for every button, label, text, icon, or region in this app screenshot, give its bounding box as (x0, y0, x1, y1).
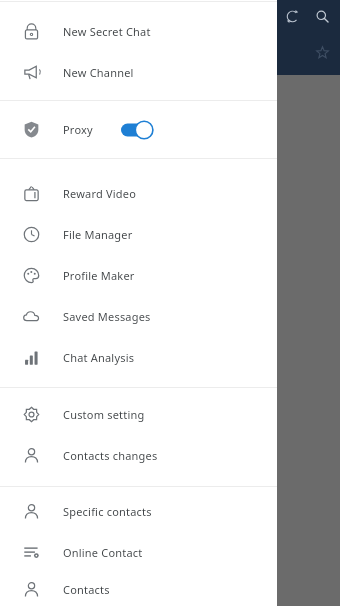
button[interactable]: Sync (278, 2, 306, 30)
button[interactable]: Profile Maker (0, 255, 277, 296)
button[interactable]: Proxy toggle (121, 120, 151, 140)
button[interactable]: Custom setting (0, 394, 277, 435)
staticText: Specific contacts (63, 504, 152, 519)
button[interactable]: Specific contacts (0, 491, 277, 532)
staticText: Contacts (63, 582, 110, 597)
button[interactable]: File Manager (0, 214, 277, 255)
button[interactable]: Contacts changes (0, 435, 277, 476)
button[interactable]: Online Contact (0, 532, 277, 573)
staticText: File Manager (63, 227, 133, 242)
staticText: Online Contact (63, 545, 143, 560)
button[interactable]: Favorites (308, 38, 336, 66)
staticText: Saved Messages (63, 309, 151, 324)
staticText: Proxy (63, 122, 93, 137)
button[interactable]: Saved Messages (0, 296, 277, 337)
button[interactable]: Search (308, 2, 336, 30)
button[interactable]: Chat Analysis (0, 337, 277, 378)
button[interactable]: New Channel (0, 52, 277, 93)
button[interactable]: Reward Video (0, 173, 277, 214)
staticText: Contacts changes (63, 448, 158, 463)
staticText: Profile Maker (63, 268, 135, 283)
staticText: New Channel (63, 65, 134, 80)
staticText: Custom setting (63, 407, 145, 422)
button[interactable]: Contacts (0, 573, 277, 606)
staticText: Reward Video (63, 186, 137, 201)
staticText: Chat Analysis (63, 350, 135, 365)
staticText: New Secret Chat (63, 24, 151, 39)
button[interactable]: New Secret Chat (0, 11, 277, 52)
button[interactable]: Proxy (0, 101, 277, 158)
